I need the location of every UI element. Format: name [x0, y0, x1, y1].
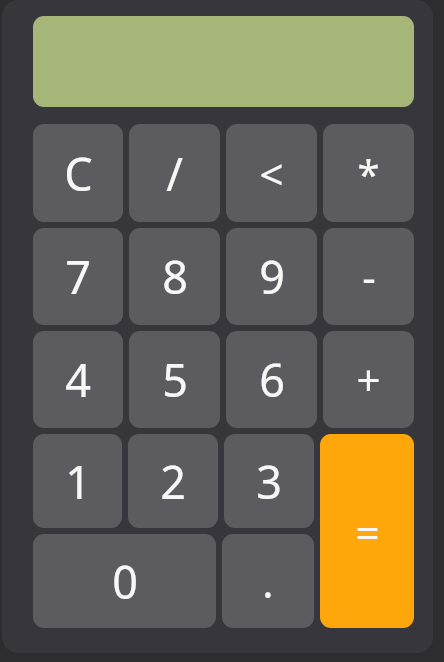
staticText: -: [362, 248, 376, 305]
button[interactable]: 7: [33, 228, 123, 325]
button[interactable]: 0: [33, 534, 216, 628]
staticText: 2: [160, 451, 186, 512]
button[interactable]: 3: [224, 434, 314, 528]
button[interactable]: 5: [129, 331, 220, 428]
button[interactable]: 8: [129, 228, 220, 325]
button[interactable]: .: [222, 534, 314, 628]
staticText: 3: [256, 451, 282, 512]
staticText: +: [356, 351, 381, 408]
staticText: 7: [65, 246, 91, 307]
button[interactable]: <: [226, 124, 317, 222]
staticText: 6: [259, 349, 285, 410]
button[interactable]: 9: [226, 228, 317, 325]
staticText: *: [357, 146, 380, 200]
staticText: C: [64, 143, 93, 204]
button[interactable]: C: [33, 124, 123, 222]
button[interactable]: Display: [33, 16, 414, 107]
button[interactable]: 1: [33, 434, 122, 528]
button[interactable]: /: [129, 124, 220, 222]
staticText: <: [259, 145, 284, 202]
staticText: 0: [112, 551, 138, 612]
staticText: /: [166, 143, 183, 204]
staticText: 9: [259, 246, 285, 307]
staticText: =: [355, 503, 380, 560]
staticText: 1: [65, 451, 91, 512]
button[interactable]: *: [323, 124, 414, 222]
button[interactable]: 2: [128, 434, 218, 528]
staticText: 8: [162, 246, 188, 307]
staticText: 5: [162, 349, 188, 410]
button[interactable]: +: [323, 331, 414, 428]
staticText: 4: [65, 349, 91, 410]
button[interactable]: 4: [33, 331, 123, 428]
button[interactable]: 6: [226, 331, 317, 428]
button[interactable]: -: [323, 228, 414, 325]
button[interactable]: =: [320, 434, 414, 628]
staticText: .: [262, 553, 274, 610]
